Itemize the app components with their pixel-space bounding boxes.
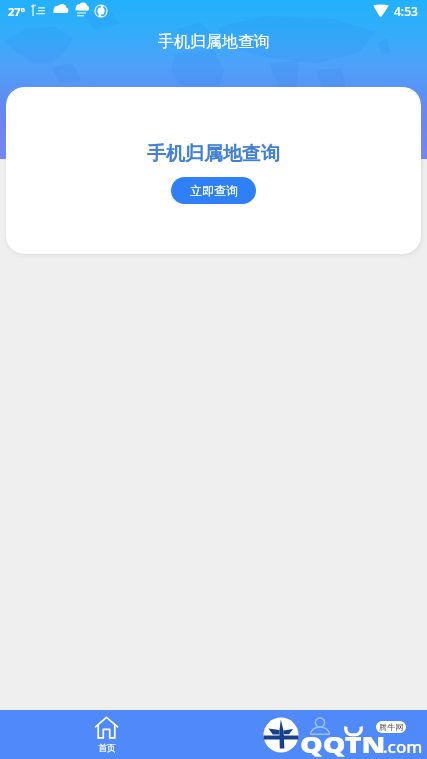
staticText: 腾牛网: [379, 722, 403, 732]
staticText: 手机归属地查询: [147, 142, 280, 166]
staticText: .com: [383, 735, 423, 758]
staticText: 立即查询: [190, 183, 238, 198]
staticText: 手机归属地查询: [158, 32, 270, 52]
button[interactable]: 立即查询: [171, 177, 256, 204]
staticText: 27°: [8, 4, 26, 19]
staticText: 4:53: [394, 3, 418, 19]
staticText: 首页: [98, 742, 116, 753]
staticText: QQTN: [300, 729, 386, 759]
button[interactable]: 首页: [0, 710, 213, 759]
